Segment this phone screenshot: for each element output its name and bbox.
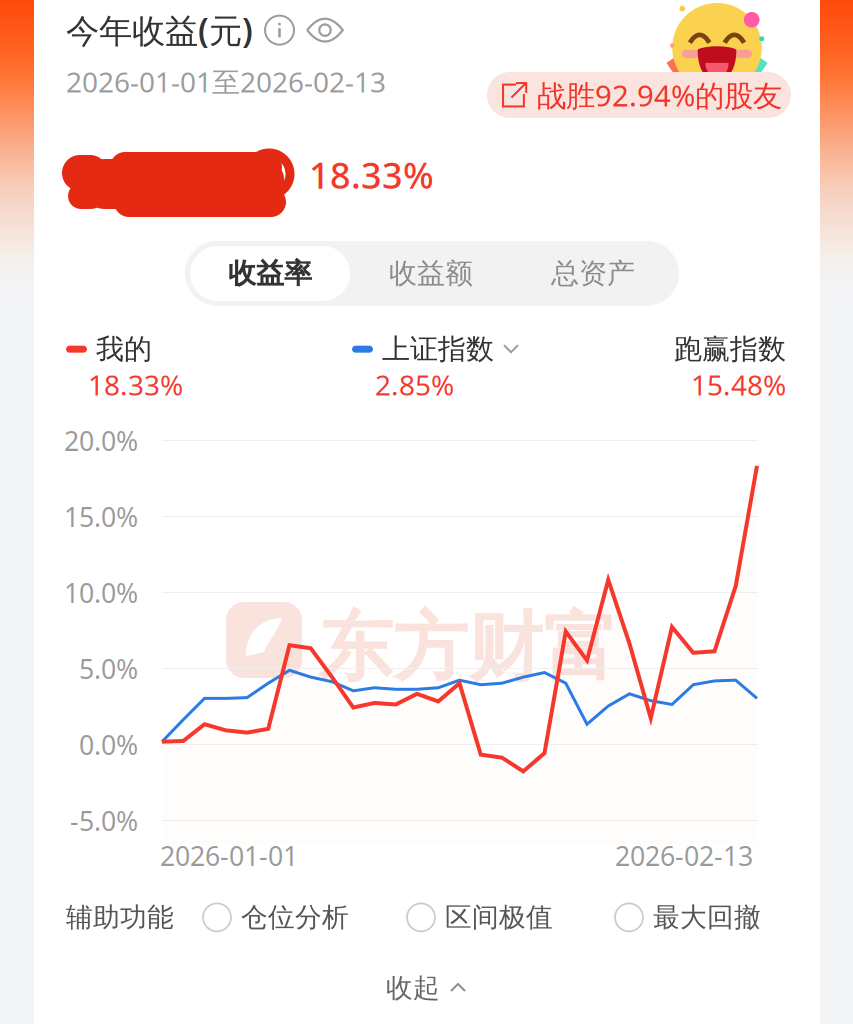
button[interactable]: 战胜92.94%的股友: [487, 72, 791, 118]
staticText: 2026-01-01至2026-02-13: [66, 63, 386, 100]
button[interactable]: 仓位分析: [203, 901, 349, 934]
staticText: 今年收益(元): [66, 8, 253, 52]
staticText: 仓位分析: [241, 901, 349, 934]
button[interactable]: 说明: [265, 16, 294, 45]
button[interactable]: 隐藏金额: [306, 19, 344, 41]
staticText: 收益额: [389, 256, 473, 291]
staticText: 辅助功能: [66, 901, 174, 934]
staticText: 2026-02-13: [615, 838, 753, 873]
staticText: 2.85%: [375, 366, 454, 403]
staticText: 区间极值: [445, 901, 553, 934]
button[interactable]: 收益率: [190, 246, 350, 301]
staticText: 2026-01-01: [160, 838, 298, 873]
staticText: 收益率: [228, 256, 312, 291]
staticText: 总资产: [551, 256, 635, 291]
button[interactable]: 收起: [356, 968, 496, 1008]
staticText: 20.0%: [64, 423, 138, 458]
staticText: 跑赢指数: [674, 332, 786, 366]
staticText: 18.33%: [309, 151, 434, 199]
button[interactable]: 总资产: [512, 246, 674, 301]
staticText: 东方财富: [318, 602, 618, 694]
staticText: 最大回撤: [653, 901, 761, 934]
staticText: 10.0%: [64, 575, 138, 610]
button[interactable]: 区间极值: [407, 901, 553, 934]
staticText: -5.0%: [70, 803, 138, 838]
button[interactable]: 最大回撤: [615, 901, 761, 934]
staticText: 0.0%: [79, 727, 138, 762]
button[interactable]: 收益额: [350, 246, 512, 301]
staticText: 收起: [386, 972, 440, 1004]
staticText: 15.0%: [64, 499, 138, 534]
staticText: 18.33%: [88, 366, 183, 403]
staticText: 15.48%: [691, 366, 786, 403]
staticText: 我的: [96, 332, 152, 366]
staticText: 战胜92.94%的股友: [537, 75, 782, 114]
staticText: 上证指数: [382, 332, 494, 366]
staticText: 5.0%: [79, 651, 138, 686]
